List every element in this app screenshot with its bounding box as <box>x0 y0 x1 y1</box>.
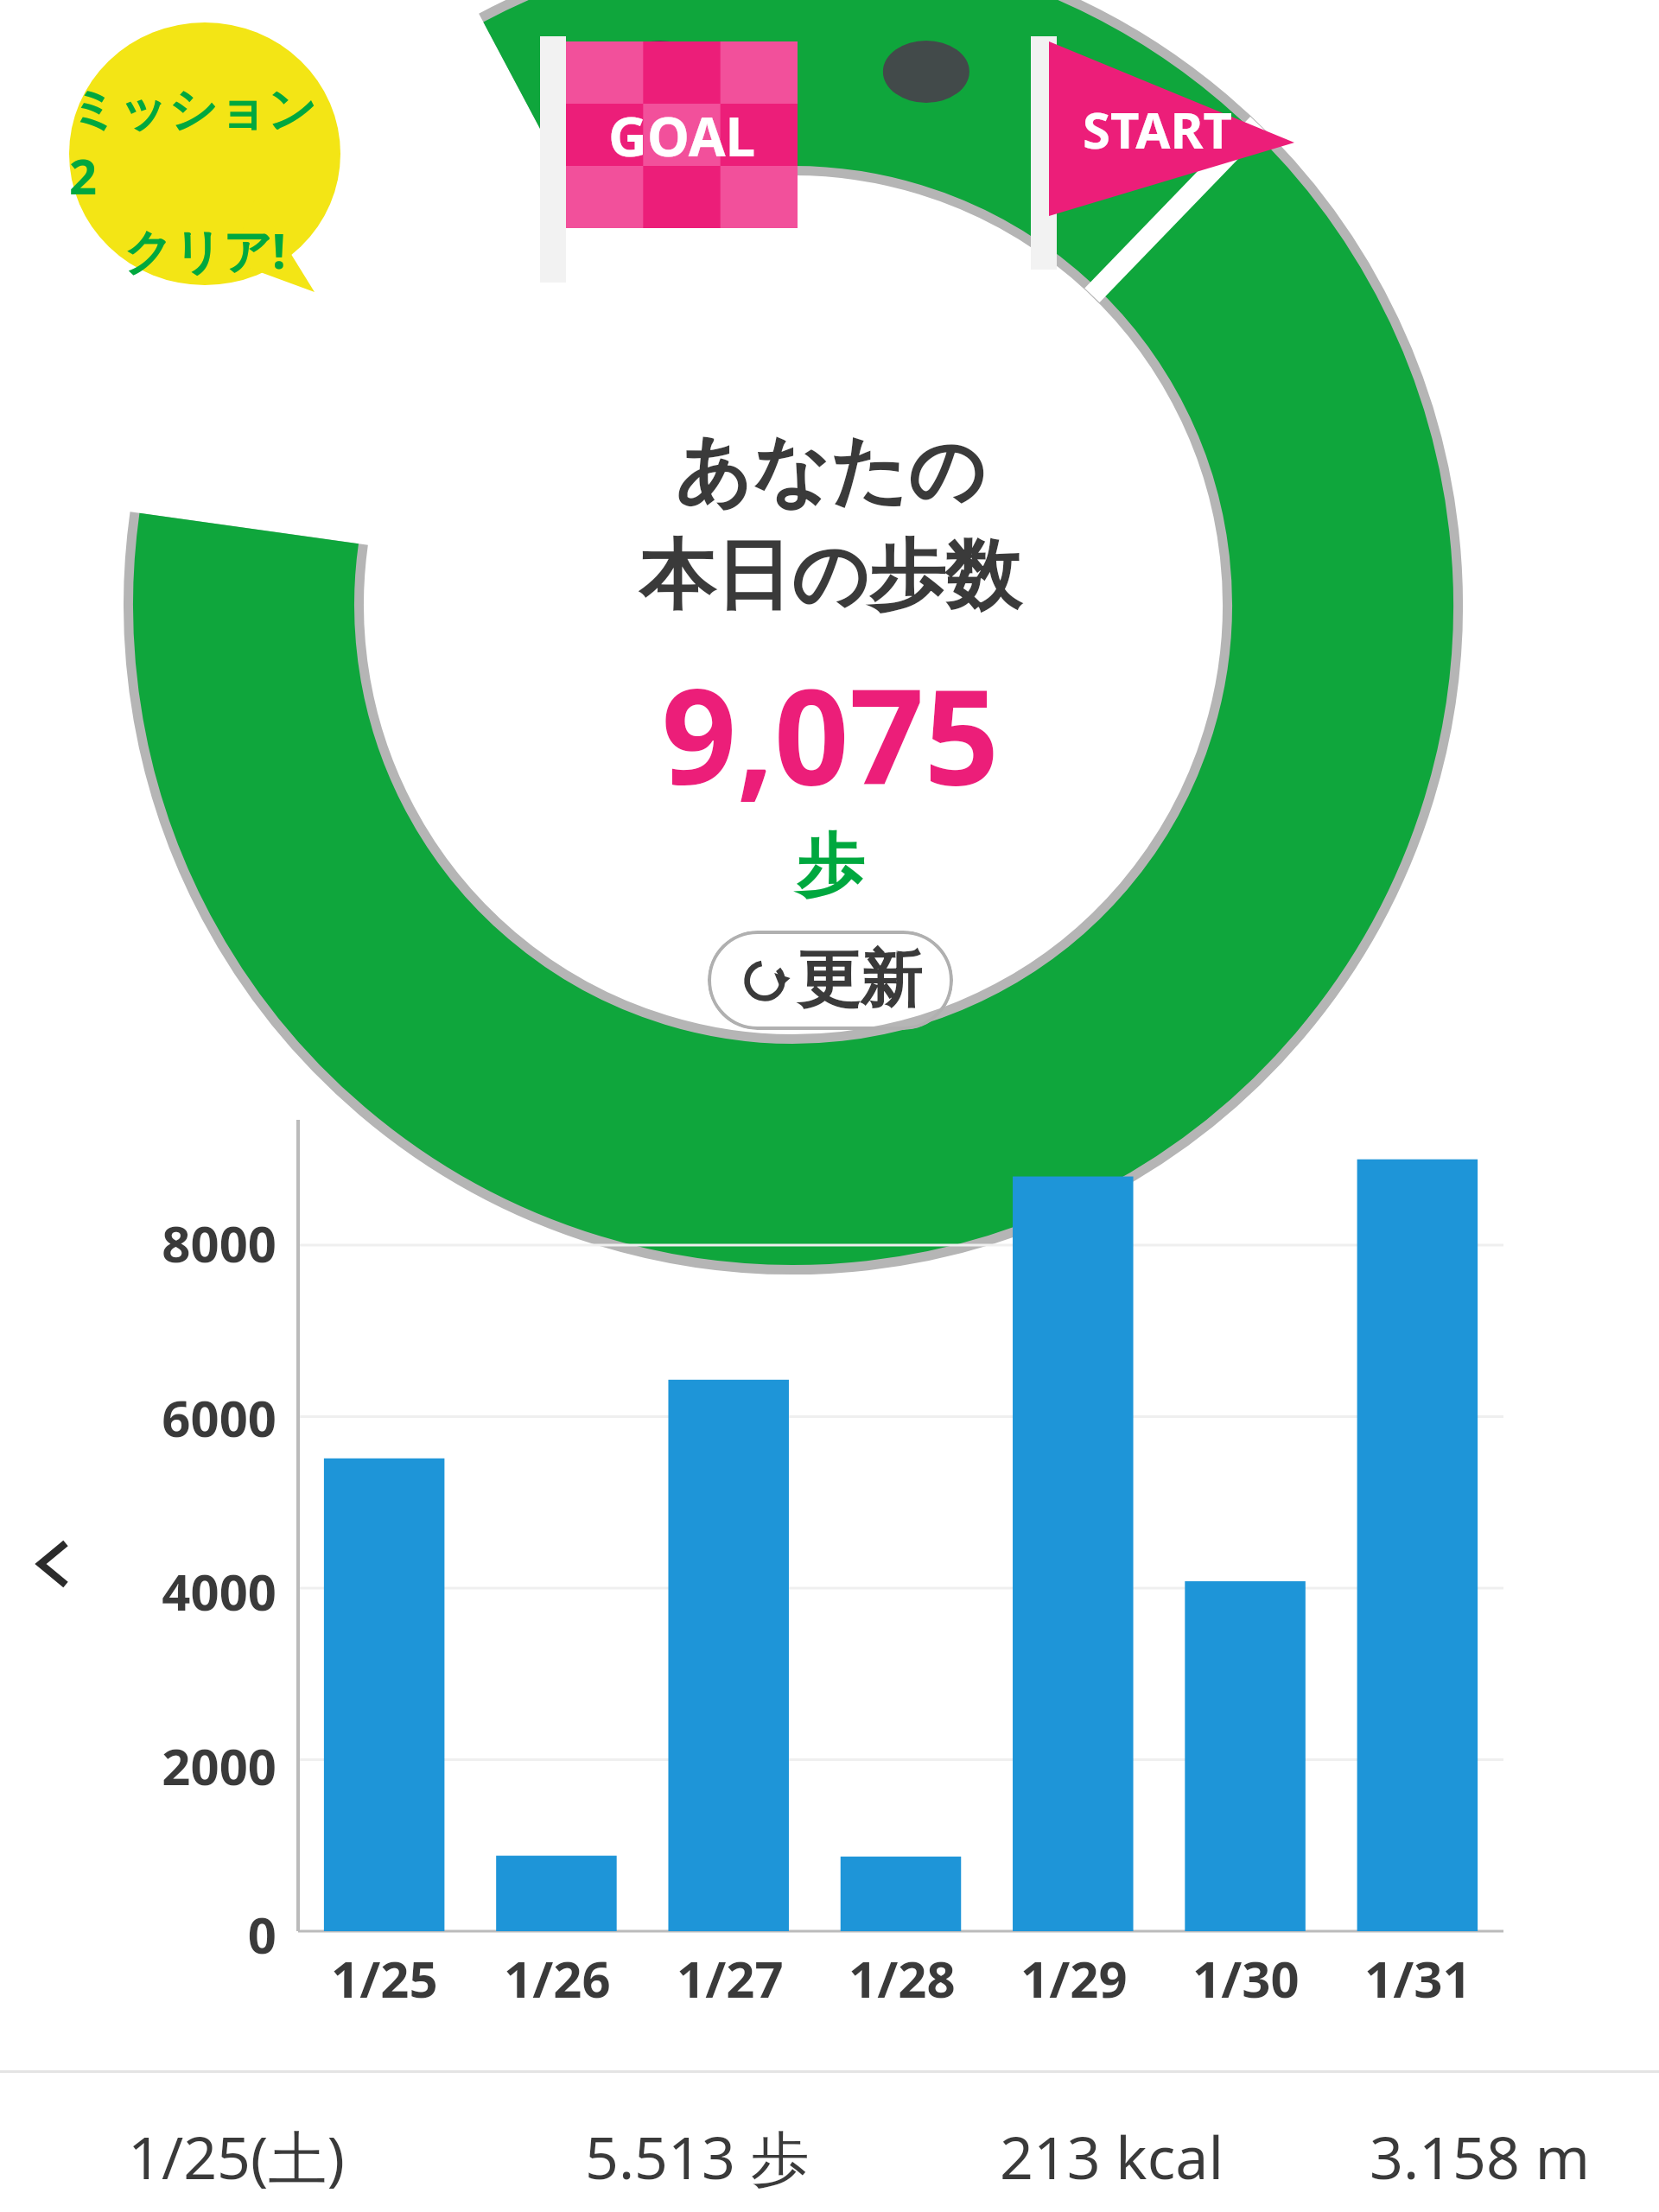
staticText: あなたの <box>674 423 986 519</box>
button[interactable]: Previous week <box>12 1521 99 1607</box>
staticText: 1/29 <box>1020 1944 1128 2012</box>
staticText: 1/30 <box>1192 1944 1300 2012</box>
staticText: ミッション2 <box>69 79 340 208</box>
staticText: 歩 <box>797 823 864 908</box>
staticText: クリア! <box>124 217 286 283</box>
button[interactable]: 更新 <box>708 931 953 1030</box>
staticText: 1/26 <box>504 1944 611 2012</box>
staticText: 1/25(土) <box>128 2116 345 2196</box>
staticText: 1/27 <box>677 1944 784 2012</box>
staticText: 3.158 m <box>1370 2116 1591 2196</box>
staticText: 1/25 <box>331 1944 438 2012</box>
staticText: 4000 <box>162 1557 276 1625</box>
staticText: START <box>1083 95 1233 163</box>
staticText: 8000 <box>162 1209 276 1277</box>
staticText: 1/31 <box>1364 1944 1471 2012</box>
staticText: 更新 <box>798 941 922 1020</box>
staticText: 1/28 <box>849 1944 956 2012</box>
staticText: 本日の歩数 <box>639 528 1021 624</box>
staticText: 9,075 <box>661 645 1000 823</box>
staticText: 0 <box>247 1900 276 1968</box>
staticText: 5.513 歩 <box>585 2116 810 2196</box>
staticText: 2000 <box>162 1732 276 1800</box>
button[interactable]: 1/25(土) <box>0 2100 1659 2212</box>
staticText: GOAL <box>608 99 756 172</box>
staticText: 6000 <box>162 1383 276 1452</box>
staticText: 213 kcal <box>1000 2116 1224 2196</box>
